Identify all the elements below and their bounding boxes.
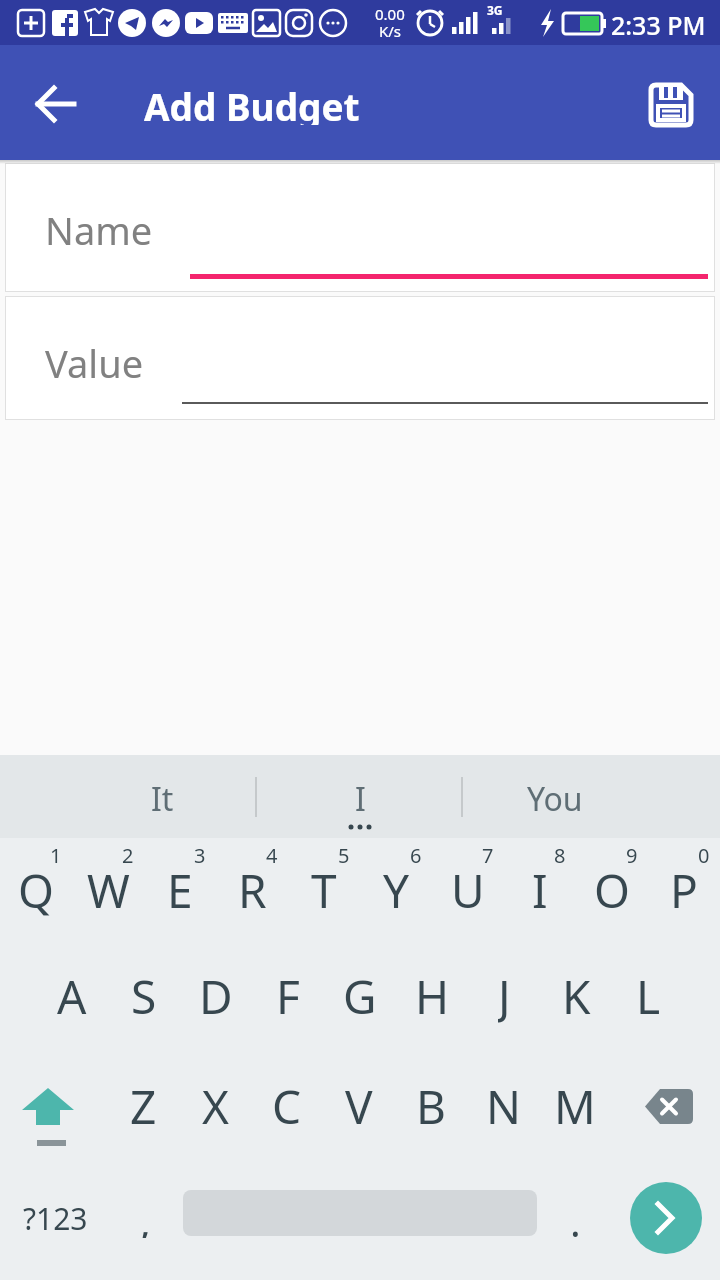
staticText: 3G [487,2,503,18]
staticText: D [199,965,233,1027]
staticText: Z [130,1075,157,1137]
staticText: L [636,965,661,1027]
staticText: 3 [194,842,206,868]
staticText: C [272,1075,302,1137]
staticText: P [670,859,698,921]
staticText: I [532,859,548,921]
staticText: Q [18,859,54,921]
staticText: 8 [554,842,566,868]
staticText: . [570,1194,581,1238]
staticText: K/s [379,21,402,41]
staticText: X [202,1075,229,1137]
staticText: N [486,1075,521,1137]
staticText: A [57,965,87,1027]
staticText: , [140,1194,151,1238]
staticText: S [131,965,157,1027]
staticText: H [415,965,450,1027]
staticText: ?123 [23,1198,88,1239]
staticText: 6 [410,842,422,868]
staticText: You [527,777,583,817]
staticText: M [554,1075,596,1137]
staticText: V [345,1075,373,1137]
staticText: B [416,1075,446,1137]
staticText: 7 [482,842,494,868]
staticText: Add Budget [144,81,360,125]
staticText: 2:33 PM [611,8,706,38]
staticText: U [451,859,485,921]
staticText: It [151,777,174,817]
staticText: K [562,965,591,1027]
staticText: E [167,859,193,921]
staticText: Y [383,859,410,921]
staticText: J [498,965,511,1027]
staticText: I [355,777,366,817]
staticText: F [276,965,300,1027]
staticText: 5 [338,842,350,868]
staticText: W [87,859,130,921]
staticText: Name [45,204,153,256]
staticText: 1 [50,842,62,868]
staticText: 0.00 [375,4,405,24]
staticText: R [238,859,267,921]
staticText: G [343,965,377,1027]
staticText: 4 [266,842,278,868]
staticText: T [311,859,337,921]
staticText: Value [45,337,144,389]
staticText: 9 [626,842,638,868]
staticText: O [594,859,630,921]
staticText: 0 [698,842,710,868]
staticText: 2 [122,842,134,868]
